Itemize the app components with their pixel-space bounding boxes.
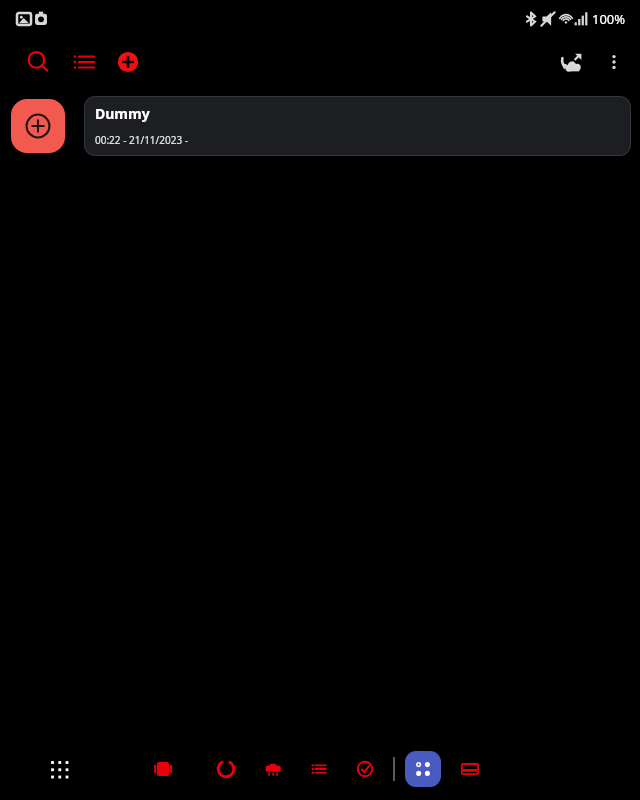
button[interactable]: Widgets [405, 751, 441, 787]
button[interactable]: Dummy [84, 96, 631, 156]
staticText: 00:22 - 21/11/2023 - [95, 133, 188, 147]
button[interactable]: More options [594, 42, 634, 82]
button[interactable]: Search [18, 42, 58, 82]
button[interactable]: Completed [347, 751, 383, 787]
staticText: Dummy [95, 104, 150, 123]
button[interactable]: All apps [38, 748, 80, 790]
button[interactable]: Battery widget [145, 751, 181, 787]
button[interactable]: Wallet [452, 751, 488, 787]
staticText: 100% [592, 10, 626, 28]
button[interactable]: Sync [550, 40, 594, 84]
button[interactable]: Progress ring [208, 751, 244, 787]
button[interactable]: Add [108, 42, 148, 82]
button[interactable]: List view [64, 42, 104, 82]
button[interactable]: Weather [255, 751, 291, 787]
button[interactable]: Add entry [11, 99, 65, 153]
button[interactable]: Tasks list [301, 751, 337, 787]
